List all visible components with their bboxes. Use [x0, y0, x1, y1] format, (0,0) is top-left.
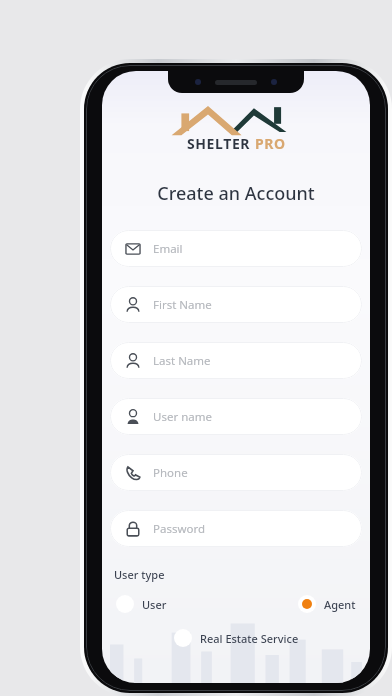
- staticText: First Name: [153, 297, 212, 313]
- button[interactable]: First Name: [110, 286, 362, 323]
- staticText: User name: [153, 409, 212, 425]
- staticText: Agent: [324, 597, 356, 612]
- button[interactable]: User: [114, 593, 169, 615]
- staticText: Real Estate Service: [200, 631, 299, 646]
- staticText: Create an Account: [157, 181, 315, 206]
- button[interactable]: Agent: [296, 593, 358, 615]
- button[interactable]: Last Name: [110, 342, 362, 379]
- button[interactable]: Password: [110, 510, 362, 547]
- staticText: Password: [153, 521, 206, 537]
- staticText: Last Name: [153, 353, 211, 369]
- staticText: Email: [153, 241, 183, 257]
- button[interactable]: Email: [110, 230, 362, 267]
- staticText: SHELTER: [187, 134, 255, 153]
- button[interactable]: User name: [110, 398, 362, 435]
- staticText: User type: [114, 567, 165, 582]
- button[interactable]: Phone: [110, 454, 362, 491]
- staticText: User: [142, 597, 167, 612]
- staticText: Phone: [153, 465, 188, 481]
- staticText: PRO: [255, 134, 286, 153]
- button[interactable]: Real Estate Service: [172, 627, 301, 649]
